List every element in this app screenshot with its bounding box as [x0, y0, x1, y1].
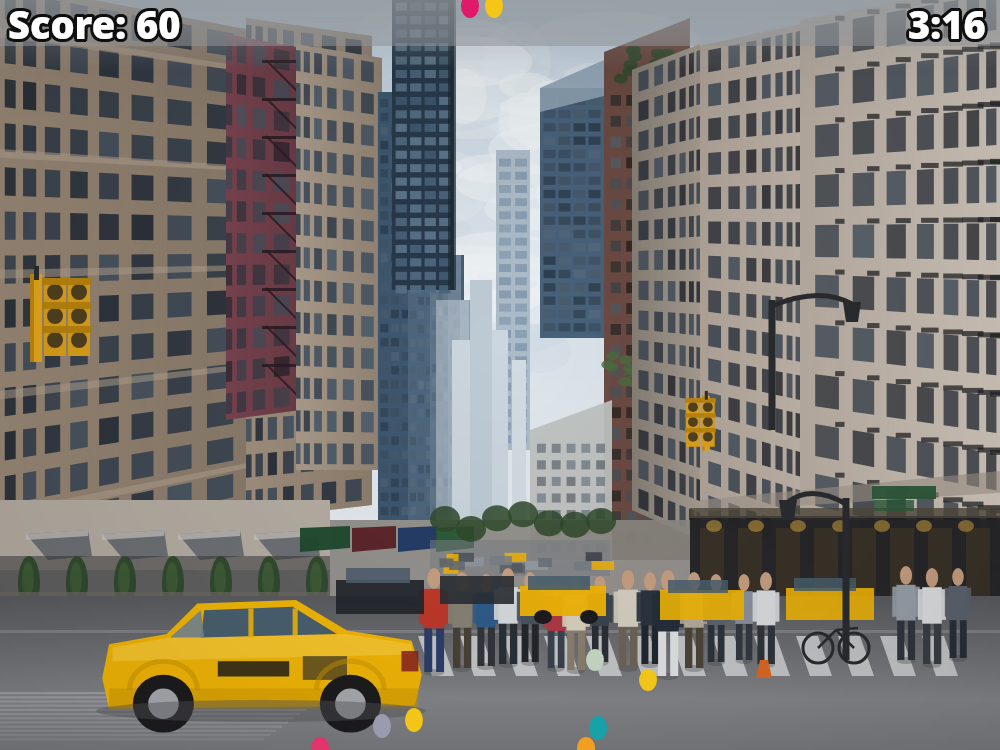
- button[interactable]: Find hidden objects in the photo: [0, 0, 1000, 750]
